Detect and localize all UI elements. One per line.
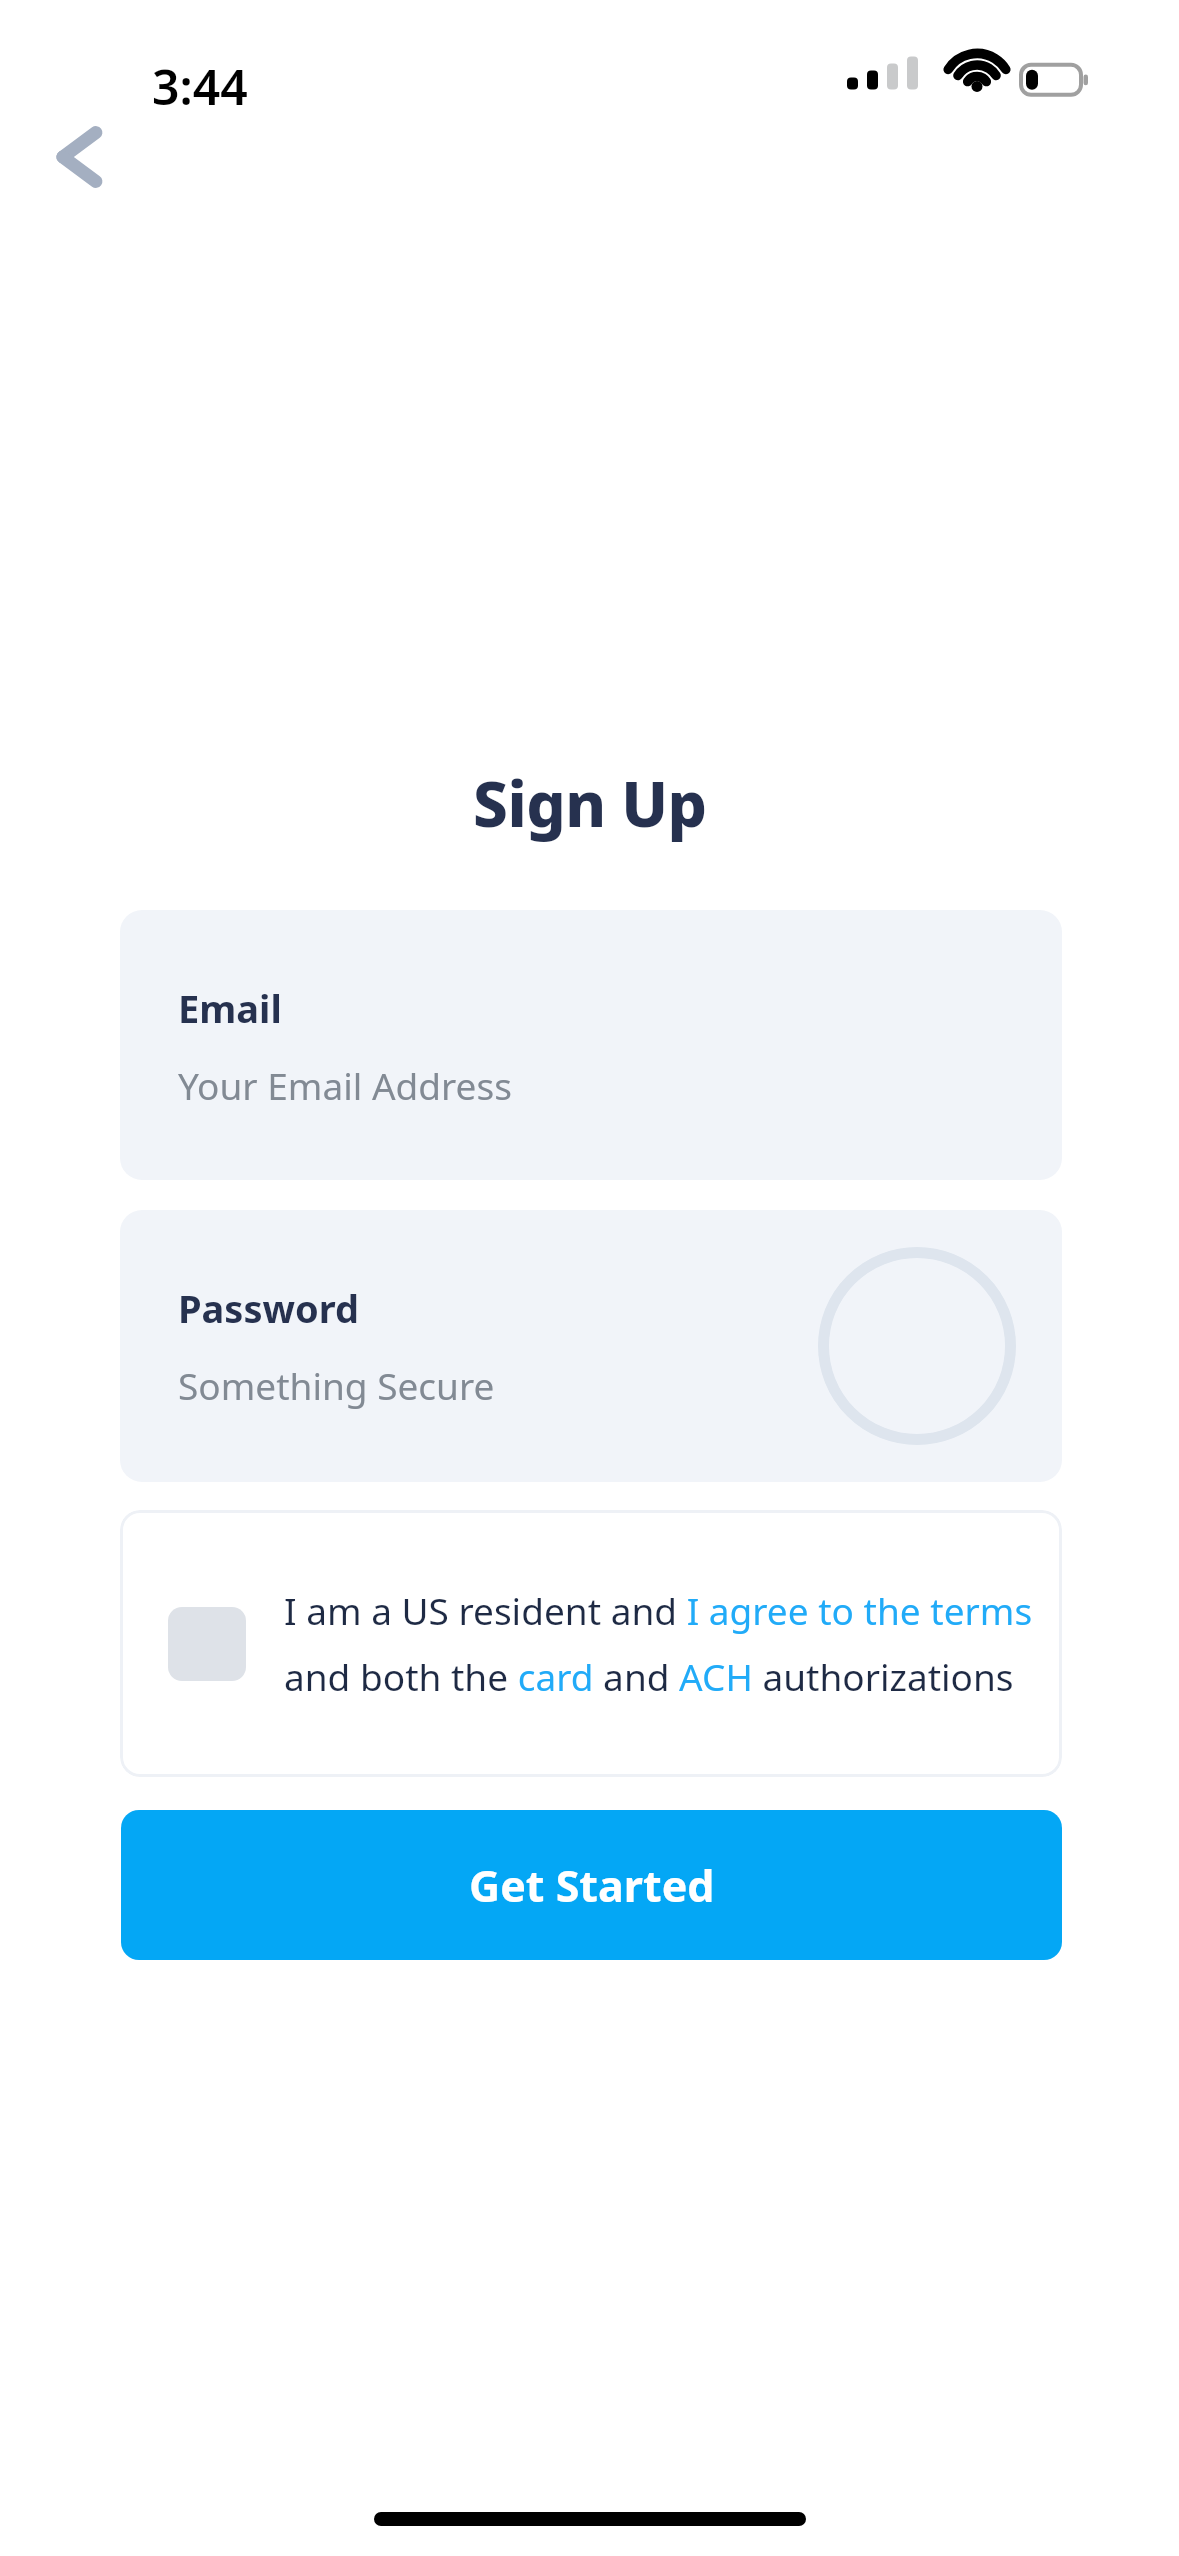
staticText: I am a US resident and I agree to the te… xyxy=(284,1585,1044,1702)
staticText: Sign Up xyxy=(473,761,707,845)
staticText: Something Secure xyxy=(178,1360,495,1410)
button[interactable]: Back xyxy=(20,110,130,204)
button[interactable]: Get Started xyxy=(121,1810,1062,1960)
staticText: Your Email Address xyxy=(178,1060,512,1110)
staticText: Get Started xyxy=(469,1856,715,1915)
button[interactable]: Email xyxy=(120,910,1062,1180)
button[interactable]: Agree checkbox xyxy=(120,1510,1062,1777)
button[interactable]: Password xyxy=(120,1210,1062,1482)
staticText: Password xyxy=(178,1282,360,1334)
button[interactable]: Agree checkbox xyxy=(168,1607,246,1681)
staticText: Email xyxy=(178,982,282,1034)
staticText: 3:44 xyxy=(152,54,248,112)
